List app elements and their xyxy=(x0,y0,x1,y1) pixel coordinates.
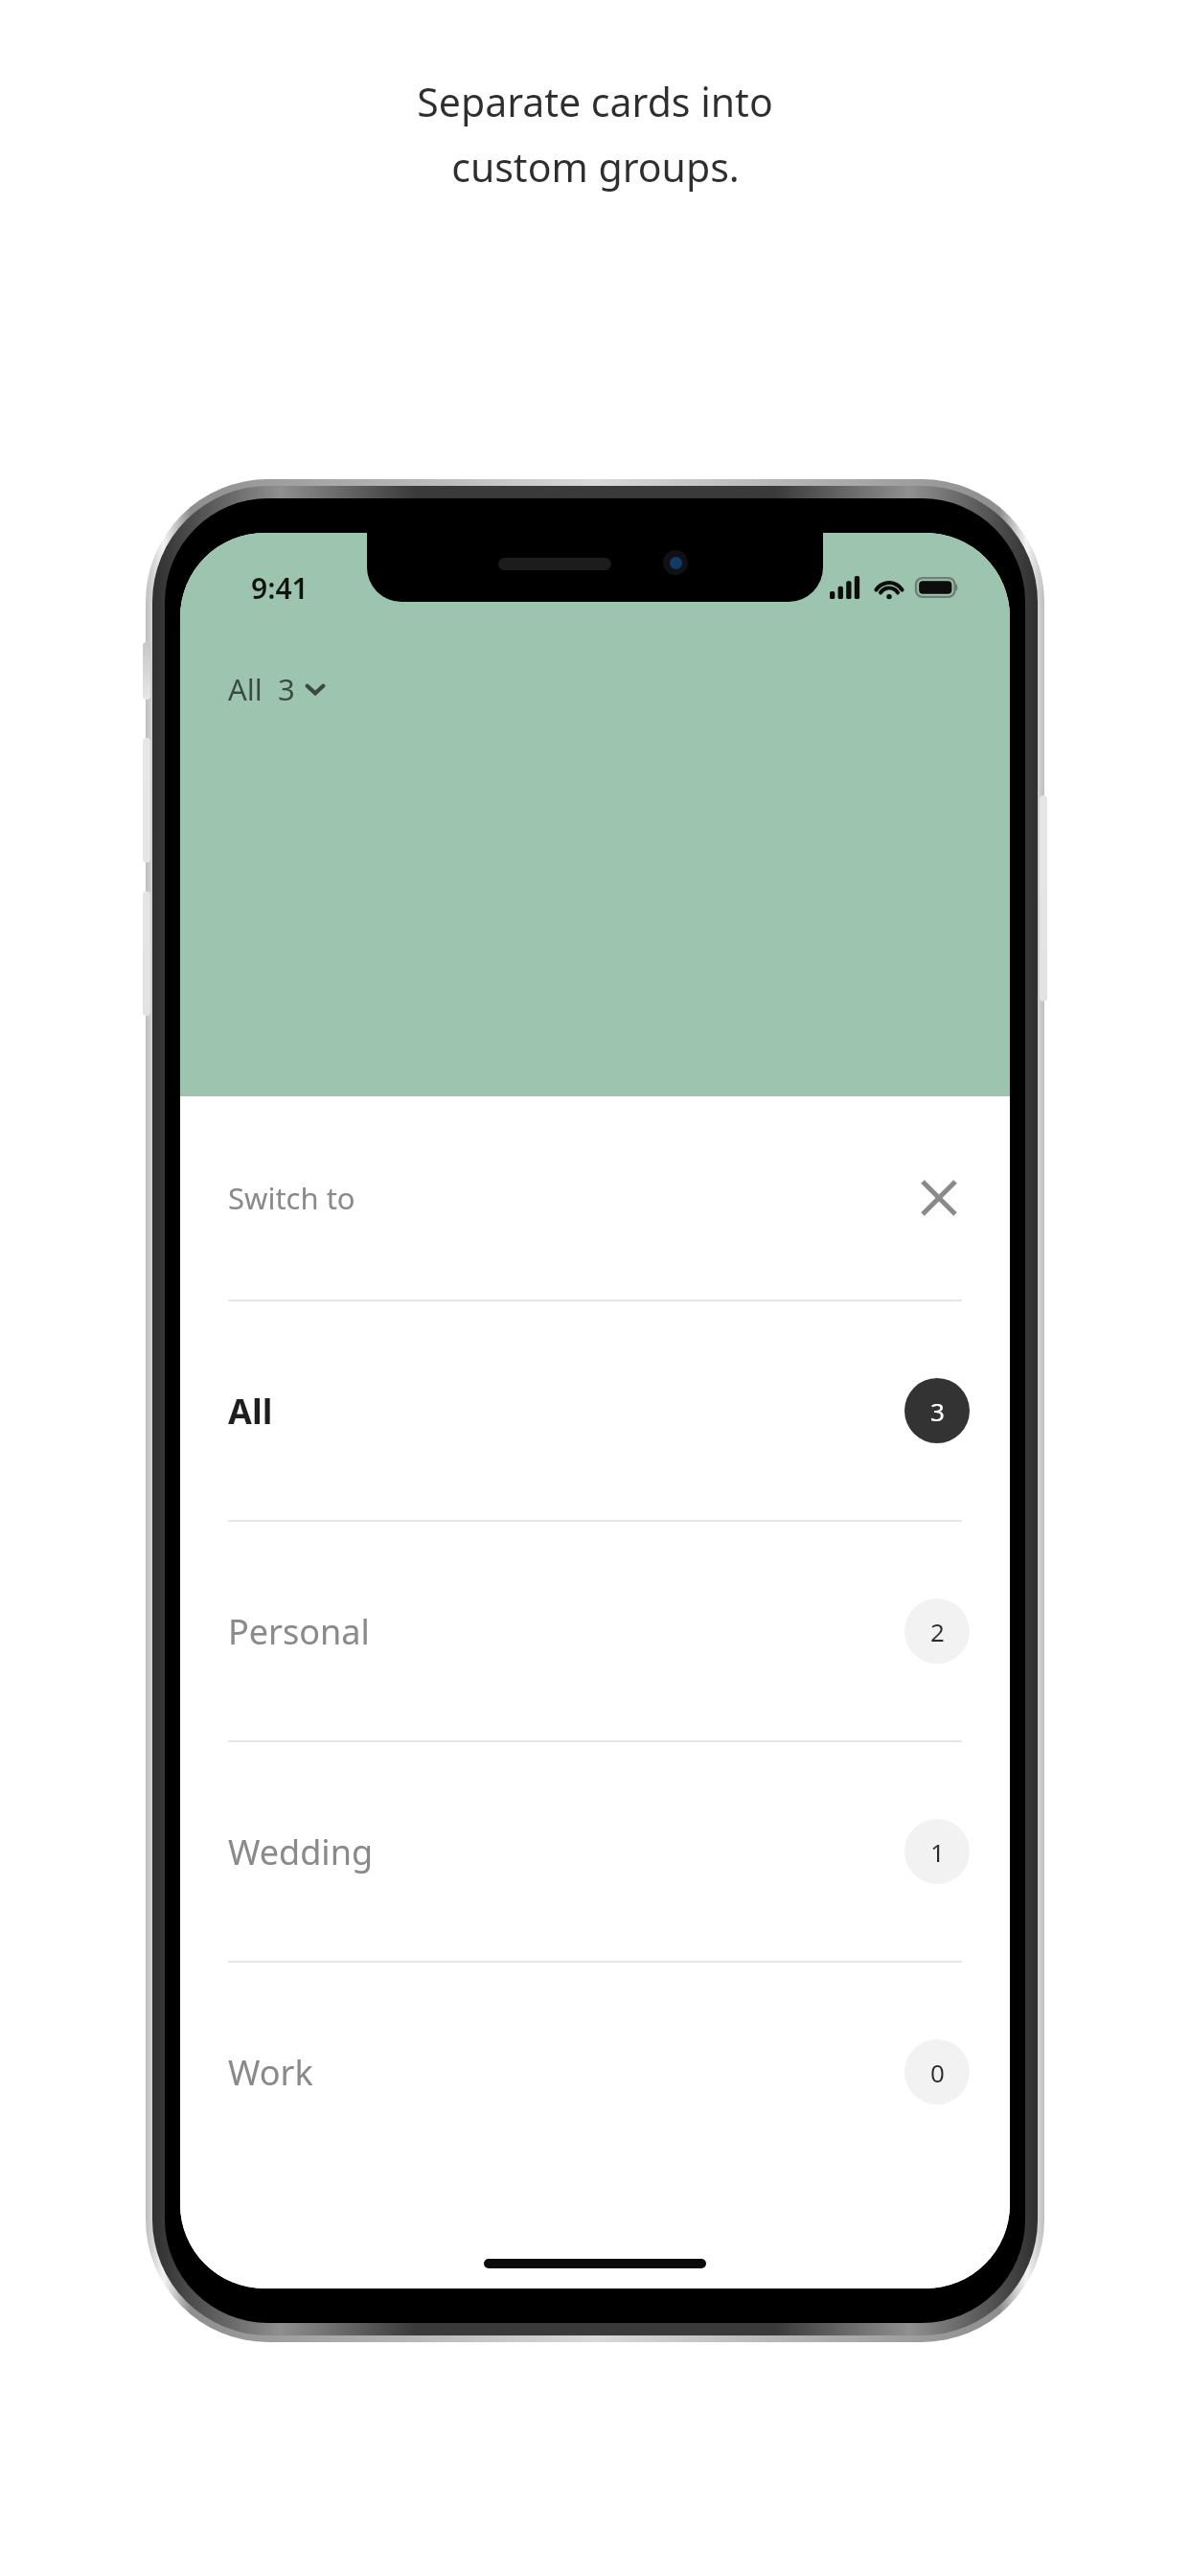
button[interactable]: All 3 xyxy=(224,663,330,715)
button[interactable]: Personal xyxy=(180,1522,1010,1740)
staticText: 1 xyxy=(930,1835,945,1869)
staticText: Work xyxy=(228,2049,313,2096)
staticText: 9:41 xyxy=(251,568,309,608)
staticText: Separate cards into xyxy=(417,75,773,128)
staticText: Wedding xyxy=(228,1828,374,1875)
button[interactable]: All xyxy=(180,1301,1010,1520)
staticText: All xyxy=(228,1388,273,1435)
staticText: 2 xyxy=(930,1615,945,1648)
staticText: 0 xyxy=(930,2056,945,2089)
button[interactable]: Work xyxy=(180,1963,1010,2181)
button[interactable]: Close xyxy=(904,1163,973,1232)
staticText: All 3 xyxy=(228,669,295,709)
staticText: Switch to xyxy=(228,1178,355,1218)
staticText: custom groups. xyxy=(451,140,740,194)
staticText: Personal xyxy=(228,1608,370,1655)
button[interactable]: Wedding xyxy=(180,1742,1010,1961)
staticText: 3 xyxy=(930,1394,945,1428)
